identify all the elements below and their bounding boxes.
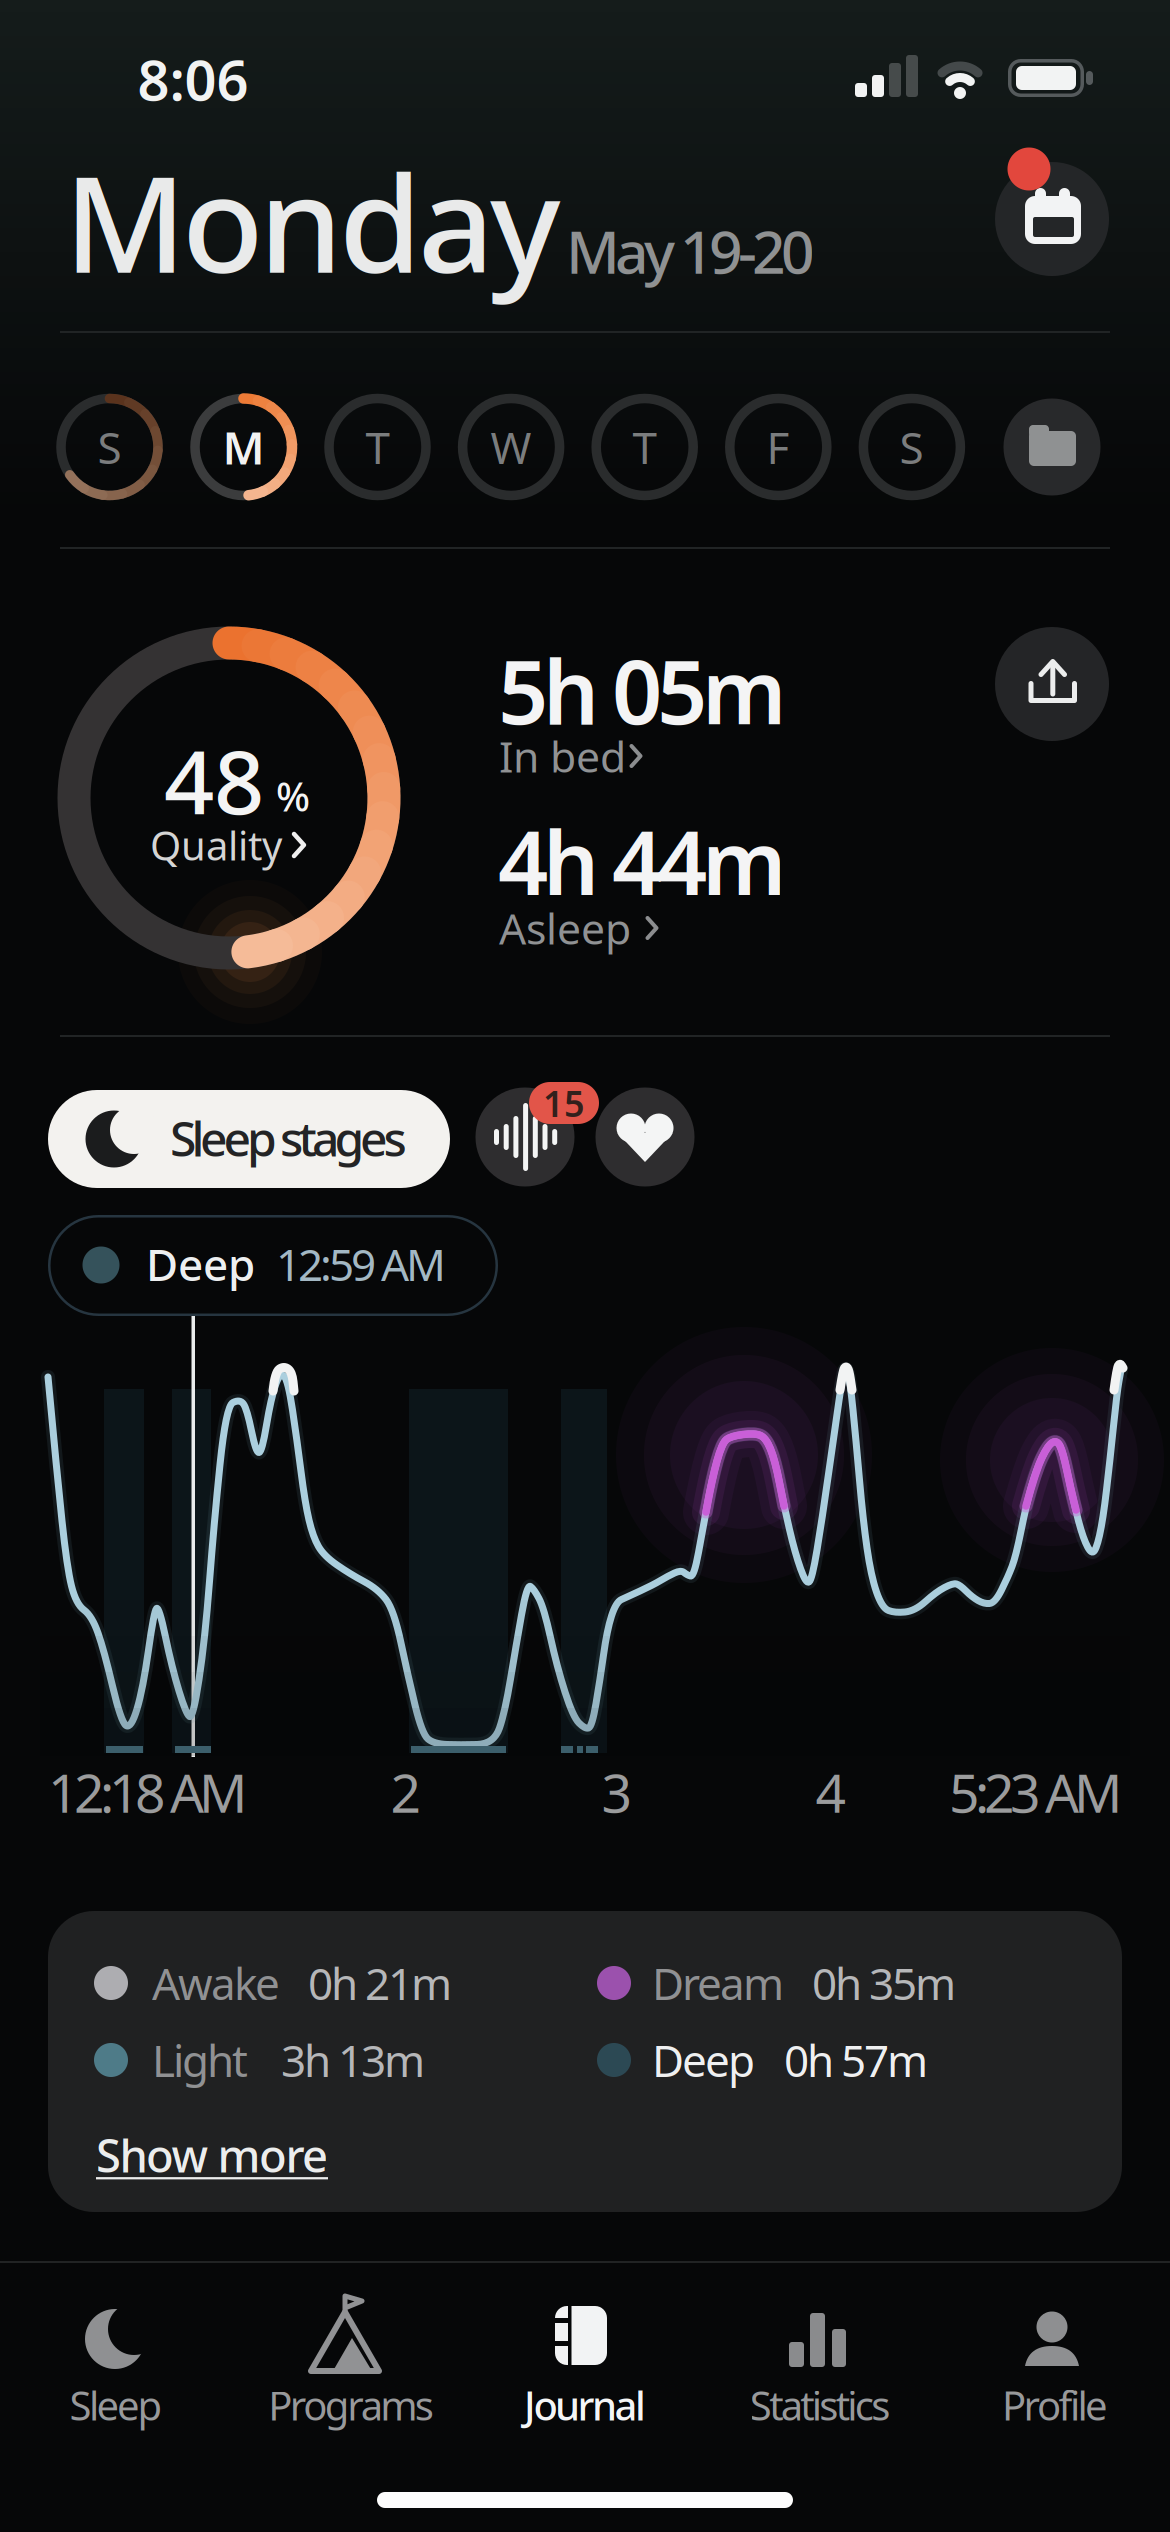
staticText: Statistics xyxy=(750,2378,890,2431)
staticText: Profile xyxy=(1002,2378,1108,2431)
staticText: T xyxy=(632,418,656,476)
staticText: 5:23 AM xyxy=(949,1757,1122,1827)
staticText: Quality xyxy=(150,818,282,871)
staticText: 48 xyxy=(164,722,264,838)
staticText: Deep xyxy=(652,2031,755,2089)
staticText: 3 xyxy=(601,1757,632,1827)
staticText: Dream xyxy=(652,1954,784,2012)
staticText: Awake xyxy=(152,1954,280,2012)
staticText: 15 xyxy=(543,1079,585,1127)
staticText: T xyxy=(365,418,389,476)
staticText: 0h 35m xyxy=(812,1954,956,2012)
staticText: 12:59 AM xyxy=(276,1235,446,1293)
staticText: 5h 05m xyxy=(498,632,786,748)
staticText: 4h 44m xyxy=(498,803,786,919)
staticText: M xyxy=(222,417,264,477)
staticText: Light xyxy=(152,2031,248,2089)
staticText: Asleep xyxy=(499,900,631,956)
staticText: 3h 13m xyxy=(281,2031,425,2089)
staticText: In bed xyxy=(499,728,626,784)
staticText: 8:06 xyxy=(137,42,248,116)
staticText: Monday xyxy=(64,132,560,310)
staticText: S xyxy=(899,418,923,476)
staticText: Show more xyxy=(96,2125,328,2185)
staticText: % xyxy=(276,769,310,822)
staticText: Sleep xyxy=(69,2378,162,2431)
staticText: 2 xyxy=(390,1757,421,1827)
staticText: Deep xyxy=(146,1235,255,1293)
staticText: Sleep stages xyxy=(170,1106,406,1170)
staticText: May 19-20 xyxy=(566,212,815,290)
staticText: F xyxy=(766,418,789,476)
staticText: W xyxy=(490,418,531,476)
staticText: 0h 57m xyxy=(784,2031,928,2089)
staticText: 0h 21m xyxy=(308,1954,452,2012)
staticText: S xyxy=(97,418,121,476)
staticText: Programs xyxy=(268,2378,434,2431)
staticText: Journal xyxy=(524,2378,646,2431)
staticText: 12:18 AM xyxy=(48,1757,247,1827)
staticText: 4 xyxy=(815,1757,846,1827)
